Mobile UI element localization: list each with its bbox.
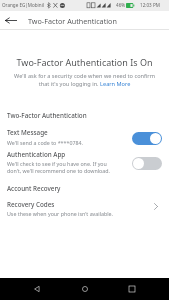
staticText: Two-Factor Authentication bbox=[7, 111, 87, 120]
staticText: Orange EG|Mobinil bbox=[2, 2, 45, 8]
staticText: We'll check to see if you have one. If y… bbox=[7, 160, 110, 174]
staticText: Two-Factor Authentication Is On bbox=[0, 56, 169, 68]
staticText: Authentication App bbox=[7, 150, 66, 159]
button[interactable]: Home bbox=[74, 278, 96, 300]
staticText: 12:03 PM bbox=[140, 2, 160, 8]
staticText: Two-Factor Authentication bbox=[28, 16, 117, 26]
button[interactable]: Back bbox=[26, 278, 48, 300]
button[interactable]: Recovery Codes bbox=[148, 198, 164, 214]
button[interactable]: Enabled bbox=[132, 132, 162, 145]
staticText: Recovery Codes bbox=[7, 200, 55, 209]
staticText: Use these when your phone isn't availabl… bbox=[7, 210, 114, 217]
staticText: 46% bbox=[116, 2, 126, 8]
button[interactable]: Recent apps bbox=[121, 278, 143, 300]
button[interactable]: Back bbox=[2, 15, 20, 26]
button[interactable]: Disabled bbox=[132, 157, 162, 170]
staticText: We'll send a code to ****0784. bbox=[7, 139, 83, 146]
staticText: We'll ask for a security code when we ne… bbox=[11, 72, 158, 88]
staticText: Text Message bbox=[7, 128, 48, 137]
staticText: Account Recovery bbox=[7, 184, 61, 193]
